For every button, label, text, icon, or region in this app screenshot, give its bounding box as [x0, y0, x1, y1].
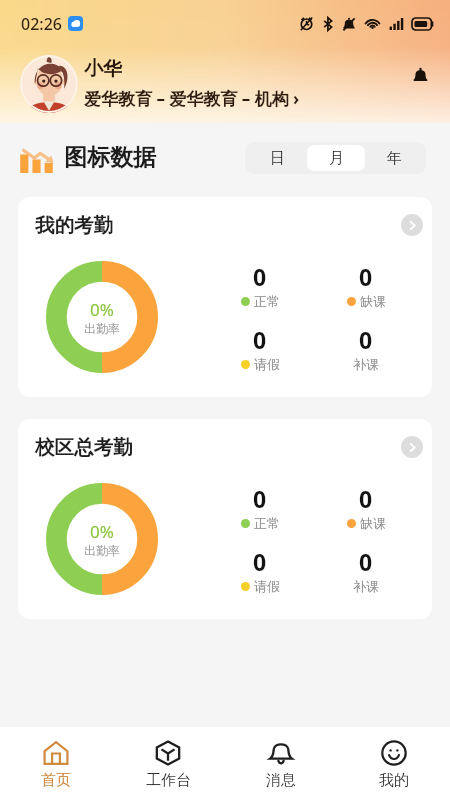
staticText: 我的考勤 — [35, 213, 113, 238]
staticText: 请假 — [254, 356, 280, 372]
staticText: 年 — [387, 149, 402, 168]
button[interactable]: 月 — [307, 145, 365, 171]
staticText: 校区总考勤 — [35, 435, 133, 460]
staticText: 日 — [270, 149, 285, 168]
staticText: 0 — [253, 324, 267, 355]
staticText: 我的 — [379, 771, 409, 790]
staticText: 出勤率 — [84, 543, 120, 558]
staticText: 缺课 — [360, 515, 386, 531]
staticText: 正常 — [254, 293, 280, 309]
staticText: 0 — [359, 546, 373, 577]
staticText: 补课 — [353, 578, 379, 594]
button[interactable]: 我的考勤 — [18, 197, 432, 397]
staticText: 0 — [359, 483, 373, 514]
button[interactable]: More — [401, 214, 423, 236]
staticText: 0 — [359, 324, 373, 355]
staticText: 爱华教育 – 爱华教育 – 机构 › — [84, 87, 300, 110]
staticText: 0 — [253, 483, 267, 514]
staticText: 首页 — [41, 771, 71, 790]
staticText: 补课 — [353, 356, 379, 372]
button[interactable]: More — [401, 436, 423, 458]
button[interactable]: 消息 — [224, 727, 337, 800]
button[interactable]: 首页 — [0, 727, 112, 800]
staticText: 02:26 — [21, 13, 62, 35]
staticText: 请假 — [254, 578, 280, 594]
button[interactable]: 日 — [248, 145, 307, 171]
button[interactable] — [20, 55, 78, 113]
staticText: 消息 — [266, 771, 296, 790]
staticText: 0 — [253, 261, 267, 292]
button[interactable]: 年 — [365, 145, 423, 171]
button[interactable]: 工作台 — [112, 727, 224, 800]
staticText: 0 — [359, 261, 373, 292]
button[interactable]: 我的 — [337, 727, 450, 800]
button[interactable]: Notifications — [406, 61, 434, 89]
staticText: 0% — [90, 298, 114, 321]
staticText: 图标数据 — [64, 143, 156, 172]
staticText: 小华 — [84, 57, 122, 81]
staticText: 工作台 — [146, 771, 191, 790]
staticText: 正常 — [254, 515, 280, 531]
staticText: 出勤率 — [84, 321, 120, 336]
staticText: 月 — [329, 149, 344, 168]
button[interactable]: 校区总考勤 — [18, 419, 432, 619]
staticText: 0% — [90, 520, 114, 543]
staticText: 缺课 — [360, 293, 386, 309]
staticText: 0 — [253, 546, 267, 577]
